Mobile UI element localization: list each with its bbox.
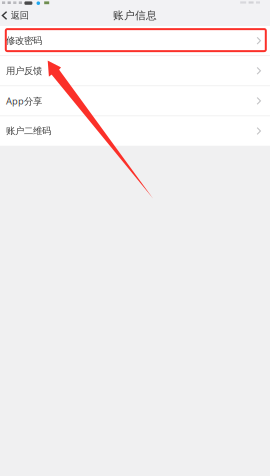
staticText: 账户二维码 bbox=[6, 125, 51, 137]
button[interactable]: App分享 bbox=[0, 86, 270, 116]
staticText: 返回 bbox=[11, 10, 29, 21]
button[interactable]: 账户二维码 bbox=[0, 116, 270, 146]
button[interactable]: 返回 bbox=[0, 5, 33, 26]
button[interactable]: 用户反馈 bbox=[0, 56, 270, 85]
staticText: 修改密码 bbox=[6, 35, 42, 46]
staticText: App分享 bbox=[6, 95, 42, 107]
button[interactable]: 修改密码 bbox=[0, 26, 270, 55]
staticText: 账户信息 bbox=[113, 9, 157, 22]
staticText: 用户反馈 bbox=[6, 65, 42, 77]
